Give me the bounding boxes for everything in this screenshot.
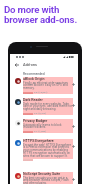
- staticText: Do more with browser add-ons.: [4, 4, 77, 25]
- button[interactable]: Add Privacy Badger: [69, 122, 78, 131]
- staticText: Dark mode for every website. Take care o…: [23, 102, 73, 111]
- staticText: HTTPS Everywhere: [23, 139, 54, 143]
- staticText: Automatically learns to block invisible …: [23, 123, 73, 129]
- staticText: 4.8 (13,021): [34, 91, 48, 94]
- staticText: The best security you can get in a web b…: [23, 176, 73, 184]
- staticText: NoScript Security Suite: [23, 172, 61, 176]
- button[interactable]: uBlock Origin: [10, 77, 78, 97]
- staticText: Finally, an efficient wide-spectrum cont…: [23, 81, 73, 90]
- button[interactable]: HTTPS Everywhere: [10, 139, 78, 159]
- button[interactable]: Add HTTPS Everywhere: [69, 142, 78, 151]
- staticText: Encrypt the web! HTTPS Everywhere is a F…: [23, 143, 73, 158]
- button[interactable]: Dark Reader: [10, 98, 78, 118]
- button[interactable]: NoScript Security Suite: [10, 172, 78, 184]
- button[interactable]: Add uBlock Origin: [69, 80, 78, 89]
- staticText: Dark Reader: [23, 98, 43, 102]
- staticText: 4.6 (3,412): [34, 112, 46, 115]
- staticText: Add-ons: [23, 63, 37, 67]
- staticText: uBlock Origin: [23, 77, 45, 81]
- button[interactable]: Add Dark Reader: [69, 101, 78, 110]
- button[interactable]: Privacy Badger: [10, 119, 78, 139]
- staticText: Privacy Badger: [23, 119, 48, 123]
- button[interactable]: Back: [12, 60, 21, 69]
- staticText: 4.7 (1,899): [34, 130, 46, 133]
- button[interactable]: Add NoScript Security Suite: [69, 175, 78, 184]
- staticText: Recommended: [23, 72, 45, 76]
